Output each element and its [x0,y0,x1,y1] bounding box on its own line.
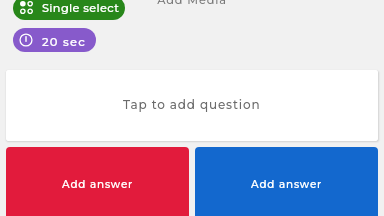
other: Time limit [19,33,33,47]
button[interactable]: Single select question type [13,0,125,20]
button[interactable]: Add answer [6,147,189,216]
staticText: Tap to add question [123,97,261,112]
staticText: Add answer [251,178,323,191]
button[interactable]: Tap to add question [6,70,378,141]
button[interactable]: Time limit [13,28,96,52]
staticText: Add Media [157,0,227,7]
other: Single select question type [20,1,33,14]
staticText: 20 sec [42,35,86,49]
staticText: Add answer [62,178,134,191]
button[interactable]: Add answer [195,147,378,216]
button[interactable]: Add Media [140,0,244,7]
staticText: Single select [42,1,120,15]
